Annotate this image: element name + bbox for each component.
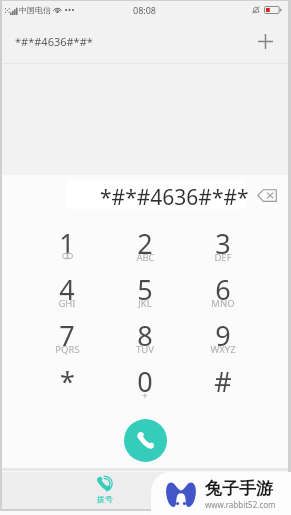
staticText: 4 [59, 271, 75, 308]
staticText: 3 [215, 225, 231, 262]
button[interactable]: 9 [184, 306, 262, 352]
staticText: www.rabbit52.com [205, 499, 276, 510]
staticText: TUV [136, 343, 154, 356]
button[interactable]: 1 [28, 214, 106, 260]
button[interactable]: Call [124, 419, 167, 462]
button[interactable]: Backspace [252, 180, 282, 210]
button[interactable]: 7 [28, 306, 106, 352]
button[interactable] [66, 180, 246, 209]
staticText: 08:08 [133, 4, 157, 16]
staticText: ABC [136, 251, 155, 264]
staticText: 6 [215, 271, 231, 308]
button[interactable]: 3 [184, 214, 262, 260]
staticText: 兔子手游 [205, 478, 273, 499]
button[interactable]: 2 [106, 214, 184, 260]
staticText: *#*#4636#*#* [15, 34, 93, 49]
staticText: 2 [137, 225, 153, 262]
staticText: *#*#4636#*#* [100, 183, 249, 212]
button[interactable]: 0 [106, 352, 184, 398]
staticText: PQRS [55, 343, 80, 356]
staticText: MNO [211, 297, 235, 310]
staticText: 5 [137, 271, 153, 308]
staticText: # [214, 363, 232, 400]
button[interactable]: 4 [28, 260, 106, 306]
staticText: + [142, 389, 148, 402]
staticText: 中国电信 [19, 5, 51, 15]
staticText: * [60, 363, 75, 400]
other: Silent mode [252, 6, 260, 14]
button[interactable]: 8 [106, 306, 184, 352]
button[interactable]: * [28, 352, 106, 398]
button[interactable]: # [184, 352, 262, 398]
staticText: 1 [59, 225, 75, 262]
staticText: 7 [59, 317, 75, 354]
staticText: 9 [215, 317, 231, 354]
button[interactable]: 6 [184, 260, 262, 306]
staticText: 8 [137, 317, 153, 354]
staticText: GHI [58, 297, 76, 310]
staticText: JKL [138, 297, 152, 310]
staticText: 0 [137, 363, 153, 400]
staticText: 拨号 [97, 494, 113, 504]
staticText: WXYZ [210, 343, 236, 356]
staticText: DEF [214, 251, 232, 264]
button[interactable]: 拨号 [96, 476, 113, 504]
button[interactable]: Add contact [250, 26, 280, 56]
button[interactable]: 5 [106, 260, 184, 306]
